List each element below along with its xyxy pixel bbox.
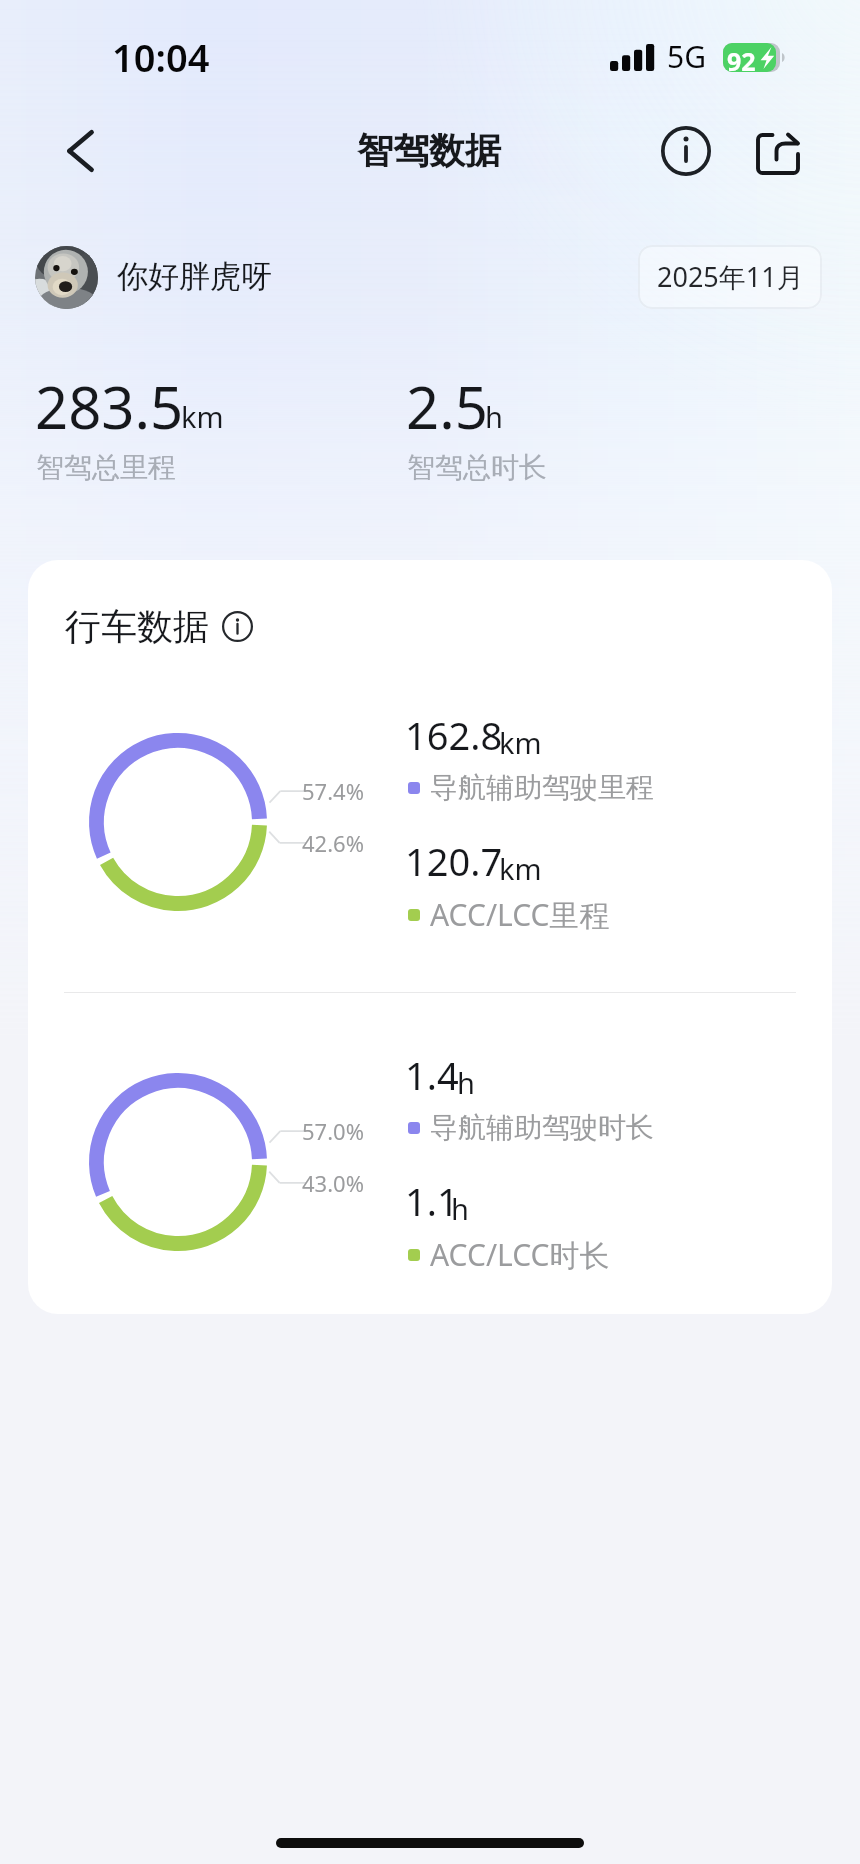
staticText: 导航辅助驾驶时长	[430, 1110, 654, 1145]
button[interactable]: Info	[648, 113, 724, 189]
staticText: h	[457, 1063, 475, 1102]
staticText: 10:04	[112, 31, 210, 83]
staticText: ACC/LCC时长	[430, 1234, 610, 1275]
button[interactable]: 你好胖虎呀	[35, 246, 253, 309]
staticText: km	[499, 723, 542, 762]
staticText: 2.5	[406, 367, 488, 446]
staticText: 5G	[667, 36, 706, 77]
staticText: km	[181, 397, 224, 436]
staticText: 智驾数据	[357, 128, 501, 173]
staticText: 1.4	[405, 1049, 459, 1101]
staticText: 43.0%	[302, 1168, 364, 1198]
staticText: 行车数据	[65, 604, 209, 649]
staticText: 57.4%	[302, 776, 364, 806]
button[interactable]: 2025年11月	[638, 245, 822, 309]
staticText: 92	[727, 44, 756, 78]
staticText: 智驾总时长	[407, 450, 547, 485]
staticText: ACC/LCC里程	[430, 894, 610, 935]
staticText: 120.7	[405, 835, 503, 887]
staticText: 283.5	[35, 367, 184, 446]
staticText: 你好胖虎呀	[117, 257, 272, 296]
button[interactable]: 行车数据	[65, 604, 253, 649]
staticText: 57.0%	[302, 1116, 364, 1146]
staticText: h	[485, 397, 503, 436]
button[interactable]: Back	[43, 113, 119, 189]
staticText: 智驾总里程	[36, 450, 176, 485]
staticText: 导航辅助驾驶里程	[430, 770, 654, 805]
button[interactable]: Share	[740, 116, 816, 192]
staticText: 42.6%	[302, 828, 364, 858]
staticText: 1.1	[405, 1175, 459, 1227]
staticText: h	[451, 1189, 469, 1228]
staticText: 2025年11月	[657, 258, 804, 295]
staticText: 162.8	[405, 709, 503, 761]
staticText: km	[499, 849, 542, 888]
